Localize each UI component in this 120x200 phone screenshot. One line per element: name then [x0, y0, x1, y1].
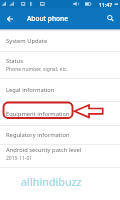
- staticText: Equipment information: [6, 110, 70, 118]
- staticText: Android security patch level: [6, 146, 82, 154]
- staticText: Legal information: [6, 86, 55, 94]
- button[interactable]: Back: [0, 9, 20, 29]
- button[interactable]: Regulatory information: [0, 126, 120, 145]
- staticText: About phone: [27, 14, 68, 23]
- staticText: System Update: [6, 37, 48, 45]
- button[interactable]: Status: [0, 52, 120, 79]
- button[interactable]: System Update: [0, 32, 120, 52]
- button[interactable]: Android security patch level: [0, 145, 120, 168]
- staticText: Phone number, signal, etc.: [6, 66, 68, 73]
- staticText: 2015-11-01: [6, 155, 33, 162]
- staticText: 11:47: [99, 1, 113, 8]
- staticText: Regulatory information: [6, 131, 70, 139]
- button[interactable]: Legal information: [0, 79, 120, 102]
- button[interactable]: Search: [102, 10, 120, 28]
- button[interactable]: Equipment information: [0, 102, 120, 126]
- staticText: Status: [6, 57, 23, 65]
- staticText: allhindibuzz: [21, 175, 82, 189]
